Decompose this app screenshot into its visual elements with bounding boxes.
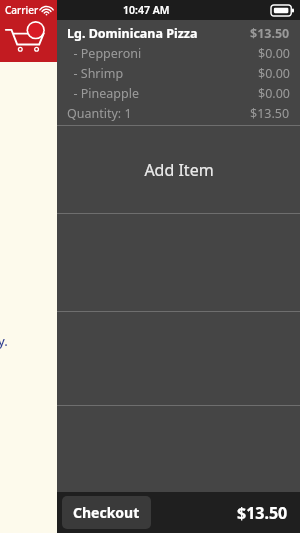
staticText: 10:47 AM [123, 3, 170, 17]
staticText: - Shrimp [67, 65, 124, 82]
staticText: - Pepperoni [67, 45, 142, 62]
staticText: Carrier [5, 3, 39, 17]
staticText: Quantity: 1 [67, 105, 132, 122]
staticText: Add Item [144, 159, 214, 181]
button[interactable]: Checkout [62, 496, 151, 529]
staticText: Checkout [73, 503, 140, 522]
staticText: $0.00 [258, 65, 290, 82]
staticText: - Pineapple [67, 85, 140, 102]
button[interactable]: Lg. Dominicana Pizza [57, 20, 300, 125]
staticText: $0.00 [258, 85, 290, 102]
button[interactable]: Cart [4, 22, 48, 56]
staticText: $13.50 [250, 25, 290, 42]
staticText: $13.50 [250, 105, 290, 122]
staticText: Lg. Dominicana Pizza [67, 25, 198, 42]
staticText: $13.50 [237, 502, 288, 524]
button[interactable]: Add Item [57, 126, 300, 213]
staticText: $0.00 [258, 45, 290, 62]
staticText: y. [0, 332, 8, 350]
